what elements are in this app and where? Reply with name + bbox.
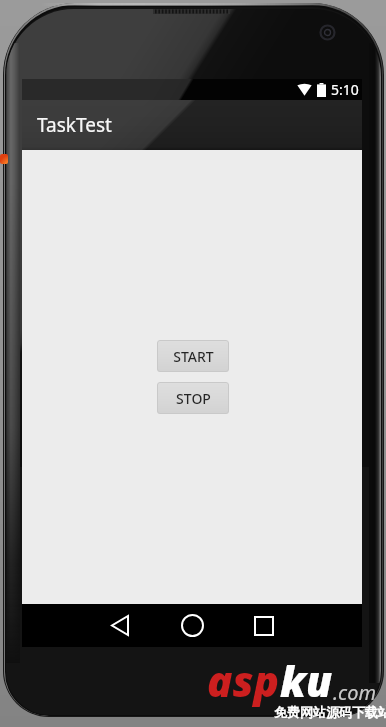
button[interactable]: STOP xyxy=(157,382,229,414)
staticText: ku xyxy=(280,652,333,709)
button[interactable]: START xyxy=(157,340,229,372)
button[interactable]: Back xyxy=(94,604,146,647)
staticText: TaskTest xyxy=(37,112,112,138)
staticText: 免费网站源码下载站! xyxy=(274,703,386,721)
staticText: .com xyxy=(333,679,376,706)
staticText: 5:10 xyxy=(331,80,359,99)
staticText: asp xyxy=(207,652,280,709)
staticText: STOP xyxy=(176,389,211,408)
button[interactable]: Home xyxy=(166,604,218,647)
button[interactable]: Recent apps xyxy=(238,604,290,647)
staticText: START xyxy=(173,347,214,366)
